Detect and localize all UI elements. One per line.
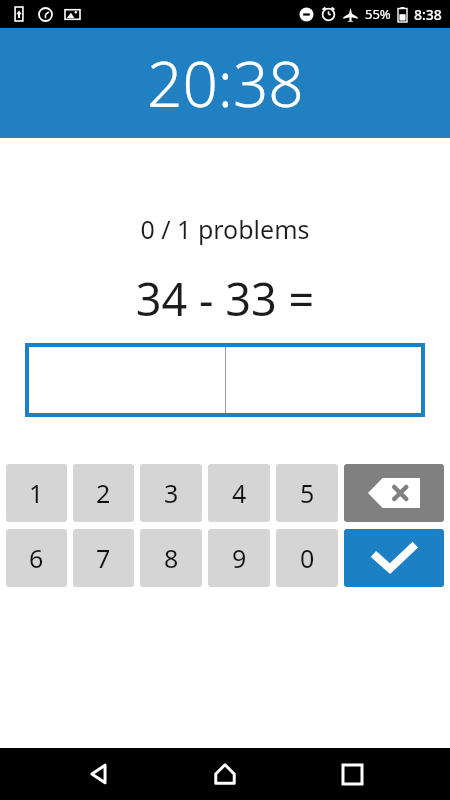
button[interactable] bbox=[29, 347, 421, 413]
button[interactable]: 9 bbox=[208, 529, 270, 587]
staticText: 3 bbox=[164, 476, 179, 510]
button[interactable]: 3 bbox=[140, 464, 202, 522]
button[interactable]: 6 bbox=[6, 529, 67, 587]
staticText: 1 bbox=[29, 476, 44, 510]
staticText: 8 bbox=[164, 541, 179, 575]
staticText: 9 bbox=[232, 541, 247, 575]
button[interactable]: 0 bbox=[276, 529, 338, 587]
button[interactable]: Submit answer bbox=[344, 529, 444, 587]
button[interactable]: 7 bbox=[73, 529, 134, 587]
button[interactable]: Back bbox=[69, 748, 127, 800]
staticText: 4 bbox=[232, 476, 247, 510]
staticText: 0 bbox=[300, 541, 315, 575]
button[interactable]: Home bbox=[196, 748, 254, 800]
staticText: 34 - 33 = bbox=[0, 268, 450, 329]
staticText: 2 bbox=[96, 476, 111, 510]
staticText: 20:38 bbox=[147, 41, 304, 125]
staticText: 0 / 1 problems bbox=[0, 212, 450, 246]
staticText: 55% bbox=[365, 5, 391, 23]
button[interactable]: 5 bbox=[276, 464, 338, 522]
staticText: 5 bbox=[300, 476, 315, 510]
button[interactable]: Recent apps bbox=[323, 748, 381, 800]
staticText: 7 bbox=[96, 541, 111, 575]
button[interactable]: Backspace bbox=[344, 464, 444, 522]
staticText: 8:38 bbox=[414, 5, 442, 24]
staticText: 6 bbox=[29, 541, 44, 575]
button[interactable]: 2 bbox=[73, 464, 134, 522]
button[interactable]: 8 bbox=[140, 529, 202, 587]
button[interactable]: 1 bbox=[6, 464, 67, 522]
button[interactable]: 4 bbox=[208, 464, 270, 522]
